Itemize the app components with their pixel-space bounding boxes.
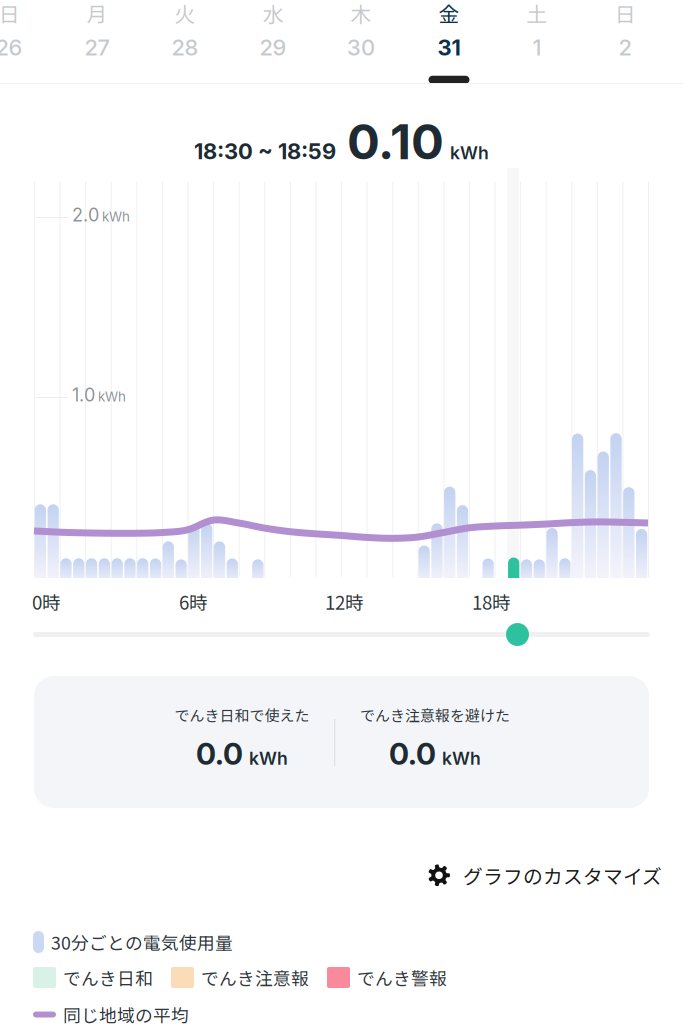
staticText: 0.10: [347, 112, 444, 171]
staticText: kWh: [450, 142, 489, 163]
staticText: kWh: [98, 388, 126, 405]
button[interactable]: グラフのカスタマイズ: [428, 861, 662, 890]
staticText: 0.0: [196, 736, 243, 772]
staticText: kWh: [442, 748, 481, 769]
staticText: 火: [174, 0, 195, 28]
staticText: 2.0: [72, 204, 99, 226]
button[interactable]: 水: [229, 0, 317, 84]
staticText: 31: [437, 34, 460, 61]
staticText: 26: [0, 34, 22, 61]
button[interactable]: Time slider: [506, 623, 529, 646]
staticText: 0時: [32, 588, 61, 615]
button[interactable]: 金: [405, 0, 493, 84]
staticText: でんき注意報: [201, 965, 309, 990]
staticText: 同じ地域の平均: [63, 1002, 189, 1024]
staticText: 水: [262, 0, 283, 28]
button[interactable]: 日: [581, 0, 669, 84]
staticText: 28: [171, 34, 198, 61]
button[interactable]: 土: [493, 0, 581, 84]
staticText: 12時: [325, 588, 364, 615]
staticText: 日: [614, 0, 635, 28]
button[interactable]: 火: [141, 0, 229, 84]
staticText: 木: [350, 0, 371, 28]
staticText: でんき日和: [63, 965, 153, 990]
staticText: グラフのカスタマイズ: [463, 861, 662, 890]
staticText: 日: [0, 0, 19, 28]
staticText: 30分ごとの電気使用量: [51, 929, 233, 955]
staticText: でんき警報: [357, 965, 447, 990]
staticText: 金: [438, 0, 459, 28]
button[interactable]: 木: [317, 0, 405, 84]
staticText: 0.0: [389, 736, 436, 772]
staticText: 1.0: [72, 384, 95, 406]
staticText: 1: [532, 34, 541, 61]
button[interactable]: 月: [53, 0, 141, 84]
staticText: 29: [259, 34, 286, 61]
staticText: 27: [84, 34, 109, 61]
staticText: 18時: [472, 588, 511, 615]
staticText: kWh: [249, 748, 288, 769]
staticText: 30: [347, 34, 375, 61]
staticText: 2: [618, 34, 631, 61]
staticText: でんき注意報を避けた: [360, 704, 510, 726]
staticText: 月: [86, 0, 107, 28]
button[interactable]: 日: [0, 0, 53, 84]
staticText: 6時: [179, 588, 208, 615]
staticText: でんき日和で使えた: [174, 704, 309, 726]
staticText: 18:30 ~ 18:59: [194, 138, 336, 164]
staticText: 土: [526, 0, 547, 28]
staticText: kWh: [102, 208, 130, 225]
